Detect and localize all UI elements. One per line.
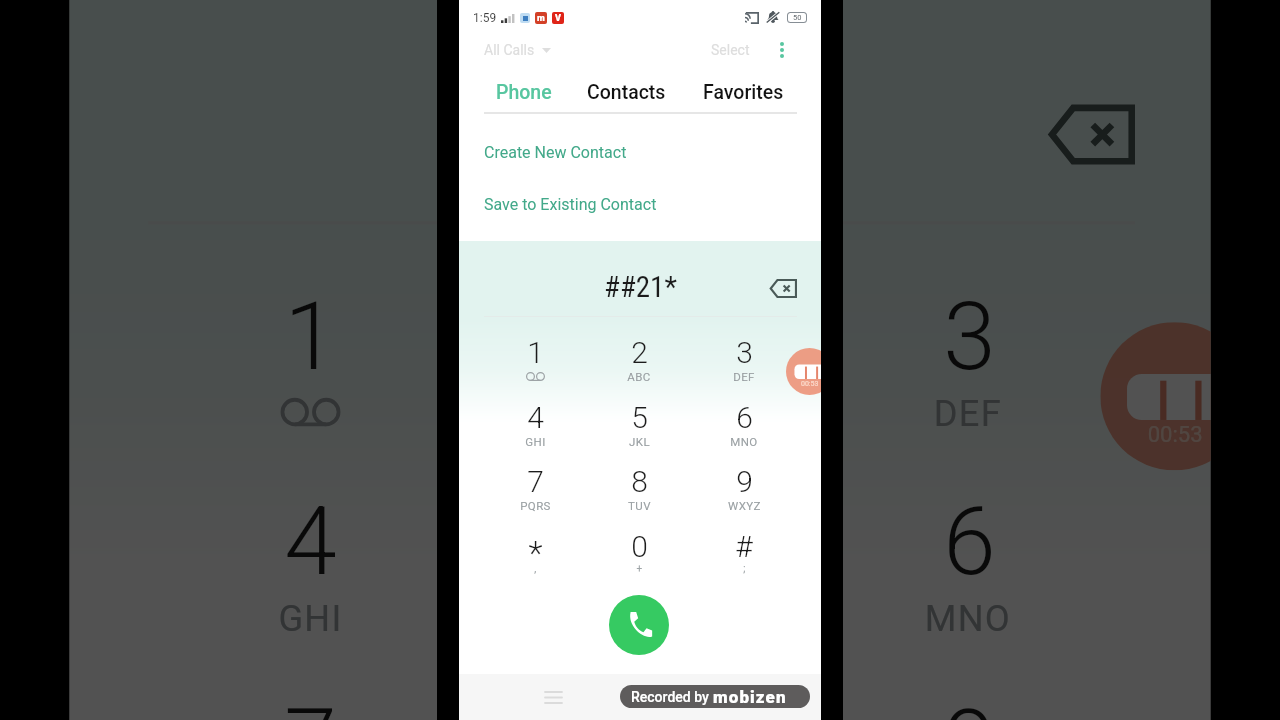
staticText: ##21* bbox=[526, 76, 757, 183]
staticText: Select bbox=[711, 42, 750, 58]
button[interactable]: 9 bbox=[804, 644, 1132, 720]
staticText: , bbox=[534, 563, 537, 575]
staticText: 1:59 bbox=[473, 11, 497, 25]
button[interactable]: 3 bbox=[692, 321, 796, 385]
staticText: 8 bbox=[612, 688, 665, 720]
button[interactable]: Create New Contact bbox=[459, 138, 821, 167]
button[interactable]: Save to Existing Contact bbox=[459, 190, 821, 219]
staticText: 7 bbox=[527, 464, 544, 499]
button[interactable]: Contacts bbox=[571, 76, 681, 108]
button[interactable]: 0 bbox=[587, 515, 691, 579]
staticText: # bbox=[735, 529, 753, 564]
staticText: JKL bbox=[629, 435, 650, 448]
staticText: 4 bbox=[527, 400, 544, 435]
button[interactable]: Recent apps bbox=[540, 684, 566, 710]
staticText: ##21* bbox=[604, 270, 677, 304]
staticText: 2 bbox=[631, 335, 648, 370]
staticText: 50 bbox=[793, 13, 802, 22]
button[interactable]: Mobizen recorder bbox=[1100, 322, 1211, 470]
staticText: 1 bbox=[284, 281, 337, 392]
button[interactable]: 1 bbox=[483, 321, 587, 385]
staticText: 00:53 bbox=[801, 380, 819, 388]
button[interactable]: 4 bbox=[483, 386, 587, 450]
button[interactable]: Select bbox=[699, 38, 761, 62]
button[interactable]: 5 bbox=[473, 442, 801, 644]
button[interactable]: 8 bbox=[473, 644, 801, 720]
staticText: Contacts bbox=[587, 81, 666, 104]
staticText: 1 bbox=[527, 335, 544, 370]
button[interactable]: 4 bbox=[145, 442, 473, 644]
button[interactable]: 2 bbox=[587, 321, 691, 385]
button[interactable]: 9 bbox=[692, 450, 796, 514]
button[interactable]: 5 bbox=[587, 386, 691, 450]
staticText: PQRS bbox=[520, 499, 551, 512]
staticText: GHI bbox=[277, 596, 344, 637]
button[interactable]: More options bbox=[770, 38, 794, 62]
button[interactable]: Phone bbox=[469, 76, 579, 108]
staticText: 7 bbox=[284, 688, 337, 720]
button[interactable]: 7 bbox=[483, 450, 587, 514]
button[interactable]: 7 bbox=[145, 644, 473, 720]
staticText: m bbox=[537, 13, 545, 24]
staticText: Save to Existing Contact bbox=[484, 195, 657, 214]
staticText: + bbox=[636, 563, 643, 575]
staticText: mobizen bbox=[713, 687, 787, 707]
button[interactable]: Call bbox=[609, 595, 669, 655]
button[interactable]: Backspace bbox=[765, 270, 801, 306]
staticText: ABC bbox=[599, 391, 675, 432]
staticText: 6 bbox=[943, 486, 996, 596]
staticText: DEF bbox=[933, 391, 1003, 432]
staticText: 9 bbox=[736, 464, 753, 499]
button[interactable]: 2 bbox=[473, 237, 801, 439]
staticText: 00:53 bbox=[1148, 423, 1204, 448]
staticText: 5 bbox=[612, 486, 665, 596]
staticText: ABC bbox=[627, 370, 651, 383]
staticText: ; bbox=[743, 563, 746, 575]
staticText: Phone bbox=[496, 81, 552, 104]
staticText: Recorded by bbox=[631, 689, 709, 705]
button[interactable]: All Calls bbox=[484, 38, 551, 62]
staticText: 3 bbox=[736, 335, 753, 370]
staticText: Create New Contact bbox=[484, 143, 627, 162]
staticText: 5 bbox=[631, 400, 648, 435]
staticText: 0 bbox=[631, 529, 648, 564]
button[interactable]: Mobizen recorder bbox=[786, 348, 821, 395]
button[interactable]: Favorites bbox=[688, 76, 798, 108]
staticText: Favorites bbox=[703, 81, 784, 104]
staticText: TUV bbox=[628, 499, 651, 512]
button[interactable]: 6 bbox=[804, 442, 1132, 644]
button[interactable]: 8 bbox=[587, 450, 691, 514]
button[interactable]: 3 bbox=[804, 237, 1132, 439]
staticText: JKL bbox=[605, 596, 671, 637]
button[interactable]: # bbox=[692, 515, 796, 579]
staticText: 9 bbox=[943, 688, 996, 720]
staticText: WXYZ bbox=[728, 499, 761, 512]
staticText: 6 bbox=[736, 400, 753, 435]
staticText: 2 bbox=[612, 281, 665, 392]
staticText: GHI bbox=[525, 435, 546, 448]
staticText: 8 bbox=[631, 464, 648, 499]
staticText: 3 bbox=[943, 281, 996, 392]
button[interactable]: * bbox=[483, 515, 587, 579]
staticText: MNO bbox=[730, 435, 758, 448]
staticText: * bbox=[528, 534, 543, 573]
button[interactable]: 6 bbox=[692, 386, 796, 450]
staticText: V bbox=[555, 13, 561, 24]
button[interactable]: Backspace bbox=[1034, 76, 1148, 190]
staticText: DEF bbox=[733, 370, 755, 383]
button[interactable]: 1 bbox=[145, 237, 473, 439]
staticText: MNO bbox=[924, 596, 1012, 637]
staticText: All Calls bbox=[484, 42, 535, 58]
staticText: 4 bbox=[284, 486, 337, 596]
